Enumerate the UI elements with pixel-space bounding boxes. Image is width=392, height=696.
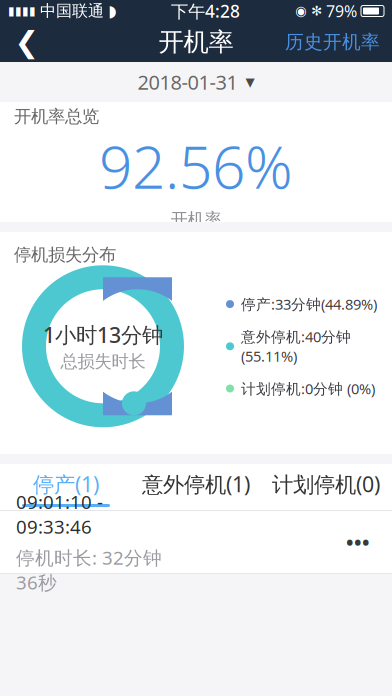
staticText: ✻ <box>311 3 322 18</box>
staticText: 总损失时长 <box>60 351 145 372</box>
staticText: ❮ <box>14 25 39 59</box>
staticText: ••• <box>346 529 370 555</box>
staticText: 开机率总览 <box>14 106 99 127</box>
staticText: 09:01:10 - 09:33:46 <box>16 489 103 539</box>
button[interactable]: 09:01:10 - 09:33:46 <box>0 511 392 573</box>
staticText: ◉ <box>295 3 307 18</box>
staticText: 开机率 <box>158 26 233 57</box>
staticText: 2018-01-31 <box>137 69 237 95</box>
staticText: 计划停机:0分钟 (0%) <box>241 379 375 398</box>
staticText: ◗ <box>108 2 116 20</box>
staticText: 下午4:28 <box>171 0 240 22</box>
staticText: ▼ <box>245 75 254 89</box>
staticText: 停产(1) <box>33 470 99 498</box>
button[interactable]: 意外停机(1) <box>131 464 261 510</box>
staticText: 计划停机(0) <box>272 470 380 498</box>
staticText: 开机率 <box>170 209 221 230</box>
button[interactable]: 停产(1) <box>1 464 131 510</box>
staticText: 意外停机(1) <box>142 470 250 498</box>
button[interactable]: 2018-01-31 <box>0 62 392 102</box>
staticText: ▮▮▮▮ <box>8 4 36 18</box>
staticText: 意外停机:40分钟(55.11%) <box>241 327 351 366</box>
staticText: 中国联通 <box>40 1 104 21</box>
staticText: 92.56% <box>99 127 293 205</box>
staticText: 停机时长: 32分钟36秒 <box>16 545 162 595</box>
staticText: 79% <box>326 0 357 22</box>
staticText: 停机损失分布 <box>14 244 116 265</box>
staticText: 停产:33分钟(44.89%) <box>241 294 377 314</box>
button[interactable]: Back <box>0 22 54 62</box>
staticText: 历史开机率 <box>285 30 380 53</box>
staticText: 1小时13分钟 <box>43 320 163 349</box>
button[interactable]: 历史开机率 <box>273 22 392 62</box>
button[interactable]: 计划停机(0) <box>261 464 391 510</box>
